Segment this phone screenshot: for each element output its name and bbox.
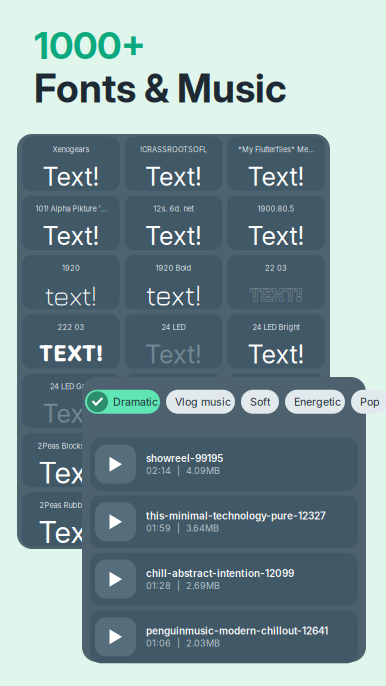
- staticText: 2Peas Rubber D…: [39, 501, 102, 510]
- staticText: Pop: [360, 395, 380, 408]
- staticText: text!: [45, 278, 97, 312]
- button[interactable]: Pop: [351, 390, 386, 414]
- staticText: 1920 Grid: [155, 382, 191, 391]
- button[interactable]: 1920: [22, 255, 120, 309]
- staticText: Energetic: [294, 395, 341, 408]
- button[interactable]: 1920 Bold: [125, 255, 222, 309]
- staticText: Text!: [248, 398, 305, 429]
- staticText: Text!: [244, 514, 309, 550]
- staticText: 222 03: [57, 323, 84, 332]
- staticText: 22 03: [265, 263, 287, 272]
- button[interactable]: 2Peas Blocks - W…: [22, 433, 120, 487]
- staticText: 24 LED: [161, 323, 185, 332]
- staticText: showreel-99195: [146, 452, 223, 464]
- staticText: 02:14 | 4.09MB: [146, 465, 220, 476]
- button[interactable]: 2Peas Script: [125, 492, 222, 546]
- staticText: 101! Alpha Pikture '…: [35, 204, 106, 213]
- staticText: Text!: [145, 398, 202, 429]
- button[interactable]: 12s. 6d. net: [125, 196, 222, 250]
- staticText: text!: [146, 278, 201, 312]
- staticText: 01:59 | 3.64MB: [146, 523, 219, 534]
- staticText: 2Peas Blocks - W…: [37, 441, 104, 450]
- staticText: TEXT!: [250, 284, 303, 306]
- staticText: !CRASSROOTSOFL: [140, 145, 207, 154]
- staticText: Text!: [141, 455, 206, 491]
- button[interactable]: Energetic: [285, 390, 345, 414]
- button[interactable]: !CRASSROOTSOFL: [125, 136, 222, 191]
- staticText: 2Peas Antique: [251, 382, 301, 391]
- button[interactable]: penguinmusic-modern-chillout-12641: [90, 610, 358, 663]
- button[interactable]: chill-abstract-intention-12099: [90, 553, 358, 606]
- button[interactable]: 2Peas Rubber D…: [22, 492, 120, 546]
- button[interactable]: 222 03: [22, 314, 120, 369]
- staticText: 12s. 6d. net: [153, 204, 193, 213]
- staticText: Text!: [141, 514, 206, 550]
- staticText: Text!: [38, 514, 103, 550]
- staticText: Text!: [42, 220, 99, 251]
- staticText: Text!: [145, 161, 202, 192]
- button[interactable]: 24 LED Bright: [227, 314, 325, 369]
- staticText: 24 LED Bright: [253, 323, 300, 332]
- staticText: Text!: [38, 455, 103, 491]
- button[interactable]: Dramatic: [85, 390, 160, 414]
- staticText: Dramatic: [113, 395, 158, 408]
- staticText: penguinmusic-modern-chillout-12641: [146, 625, 328, 637]
- button[interactable]: Soft: [241, 390, 279, 414]
- button[interactable]: 101! Alpha Pikture '…: [22, 196, 120, 250]
- button[interactable]: 2Peas Simple: [227, 492, 325, 546]
- staticText: TEXT!: [39, 334, 103, 375]
- button[interactable]: this-minimal-technology-pure-12327: [90, 495, 358, 548]
- button[interactable]: 2Peas Antique: [227, 374, 325, 428]
- staticText: Text!: [145, 339, 202, 370]
- button[interactable]: 1920 Grid: [125, 374, 222, 428]
- staticText: Vlog music: [175, 395, 231, 408]
- staticText: Text!: [42, 161, 99, 192]
- button[interactable]: 1900.80.5: [227, 196, 325, 250]
- staticText: Soft: [250, 395, 270, 408]
- button[interactable]: Vlog music: [166, 390, 235, 414]
- staticText: 01:28 | 2.69MB: [146, 580, 220, 591]
- staticText: this-minimal-technology-pure-12327: [146, 510, 326, 522]
- button[interactable]: Xenogears: [22, 136, 120, 191]
- staticText: chill-abstract-intention-12099: [146, 567, 294, 579]
- staticText: Text!: [42, 398, 99, 429]
- staticText: *My Flutterflies* Me…: [238, 145, 314, 154]
- button[interactable]: 24 LED Grid: [22, 374, 120, 428]
- staticText: Text!: [248, 220, 305, 251]
- button[interactable]: showreel-99195: [90, 438, 358, 491]
- button[interactable]: *My Flutterflies* Me…: [227, 136, 325, 191]
- staticText: 1000+: [34, 23, 146, 68]
- staticText: 1900.80.5: [258, 204, 295, 213]
- staticText: Text!: [145, 220, 202, 251]
- button[interactable]: 24 LED: [125, 314, 222, 369]
- staticText: 01:06 | 2.03MB: [146, 638, 220, 649]
- staticText: Text!: [248, 161, 305, 192]
- button[interactable]: 2Peas Brrrr: [125, 433, 222, 487]
- staticText: 1920 Bold: [155, 263, 191, 272]
- staticText: 1920: [62, 263, 80, 272]
- button[interactable]: 2Peas Cheerful: [227, 433, 325, 487]
- staticText: Fonts & Music: [34, 65, 287, 112]
- staticText: Text!: [248, 339, 305, 370]
- button[interactable]: 22 03: [227, 255, 325, 309]
- staticText: Xenogears: [52, 145, 89, 154]
- staticText: 24 LED Grid: [50, 382, 92, 391]
